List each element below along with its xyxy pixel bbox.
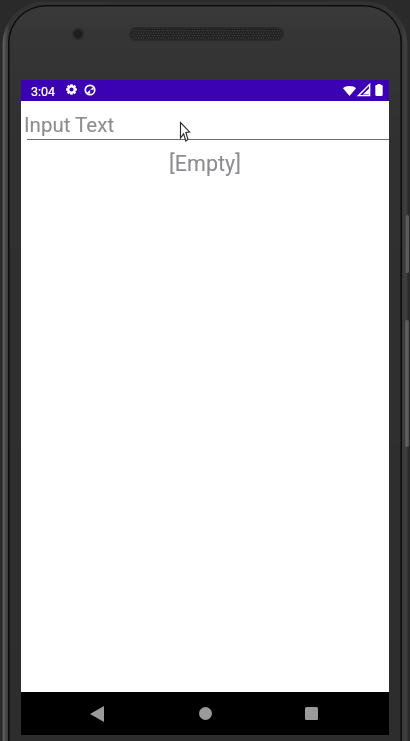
button[interactable]: Input Text (21, 101, 389, 143)
button[interactable]: Home (181, 692, 229, 735)
staticText: [Empty] (21, 151, 389, 176)
staticText: Input Text (24, 113, 115, 137)
button[interactable]: Recent apps (287, 692, 335, 735)
staticText: 3:04 (31, 84, 56, 99)
button[interactable]: Back (73, 692, 121, 735)
